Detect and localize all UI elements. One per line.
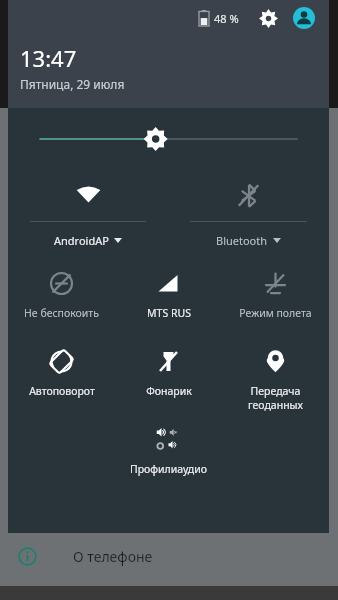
staticText: Не беспокоить bbox=[24, 306, 99, 320]
button[interactable]: Автоповорот bbox=[8, 336, 115, 414]
button[interactable]: О телефоне bbox=[0, 533, 338, 579]
button[interactable]: Фонарик bbox=[115, 336, 222, 414]
button[interactable]: Settings bbox=[253, 3, 283, 33]
button[interactable]: MTS RUS bbox=[115, 258, 222, 336]
staticText: AndroidAP bbox=[54, 233, 109, 248]
staticText: Передача геоданных bbox=[224, 384, 327, 412]
button[interactable]: Режим полета bbox=[222, 258, 329, 336]
button[interactable]: Bluetooth bbox=[168, 170, 329, 258]
staticText: MTS RUS bbox=[147, 306, 191, 320]
staticText: Пятница, 29 июля bbox=[20, 76, 125, 92]
button[interactable]: User profile bbox=[289, 3, 319, 33]
staticText: Bluetooth bbox=[216, 233, 268, 248]
staticText: Профилиаудио bbox=[130, 462, 207, 476]
staticText: 48 % bbox=[214, 11, 239, 26]
button[interactable]: Профилиаудио bbox=[115, 414, 222, 492]
staticText: Режим полета bbox=[239, 306, 312, 320]
button[interactable]: Brightness bbox=[8, 108, 329, 170]
staticText: О телефоне bbox=[73, 547, 153, 566]
staticText: 13:47 bbox=[20, 43, 77, 73]
button[interactable]: AndroidAP bbox=[8, 170, 168, 258]
staticText: Фонарик bbox=[146, 384, 192, 398]
staticText: Автоповорот bbox=[29, 384, 95, 398]
button[interactable]: Передача геоданных bbox=[222, 336, 329, 414]
button[interactable]: Не беспокоить bbox=[8, 258, 115, 336]
